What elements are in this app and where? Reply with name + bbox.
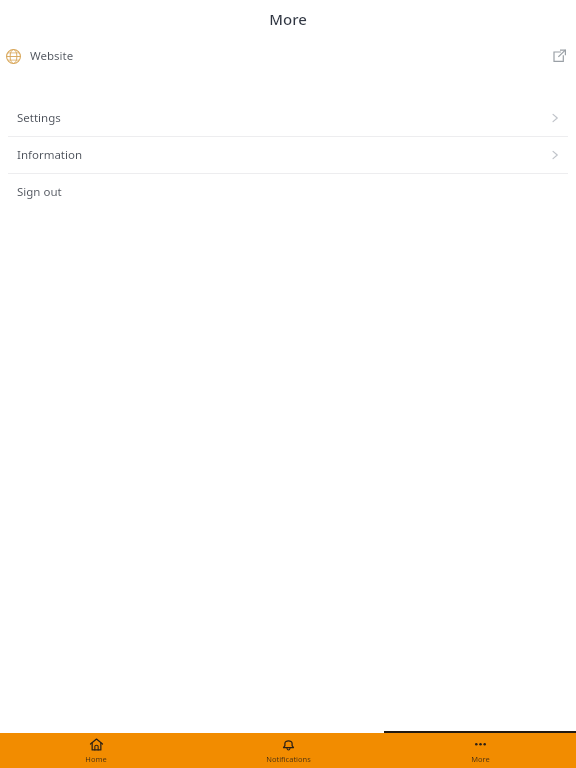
staticText: Settings — [17, 110, 61, 126]
staticText: More — [471, 754, 490, 764]
button[interactable]: More — [384, 733, 576, 768]
button[interactable]: Information — [0, 137, 576, 173]
button[interactable]: Sign out — [0, 174, 576, 210]
other: Open website in browser — [551, 49, 566, 64]
staticText: Home — [85, 754, 107, 764]
button[interactable]: Notifications — [192, 733, 384, 768]
button[interactable]: Home — [0, 733, 192, 768]
staticText: Information — [17, 147, 83, 163]
staticText: Sign out — [17, 184, 62, 200]
button[interactable]: Settings — [0, 100, 576, 136]
staticText: More — [269, 9, 307, 29]
button[interactable]: Website — [0, 38, 576, 74]
staticText: Website — [30, 48, 74, 64]
staticText: Notifications — [266, 754, 311, 764]
